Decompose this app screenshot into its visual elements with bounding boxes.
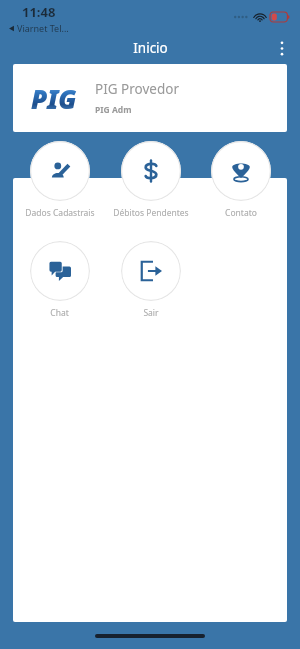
staticText: Sair	[143, 307, 159, 319]
button[interactable]: Sair	[106, 239, 195, 321]
staticText: 11:48	[22, 3, 56, 21]
staticText: Débitos Pendentes	[113, 207, 189, 219]
staticText: Dados Cadastrais	[25, 207, 95, 219]
button[interactable]: Dados Cadastrais	[15, 139, 104, 221]
button[interactable]: Débitos Pendentes	[106, 139, 195, 221]
button[interactable]: Chat	[15, 239, 104, 321]
staticText: PIG	[31, 81, 77, 116]
button[interactable]: More options	[267, 33, 297, 63]
staticText: Viarnet Tel...	[17, 22, 69, 34]
button[interactable]: Contato	[196, 139, 285, 221]
staticText: Contato	[225, 207, 257, 219]
staticText: Inicio	[133, 39, 168, 57]
staticText: PIG Adm	[95, 104, 132, 116]
staticText: Chat	[50, 307, 69, 319]
staticText: PIG Provedor	[95, 80, 179, 98]
